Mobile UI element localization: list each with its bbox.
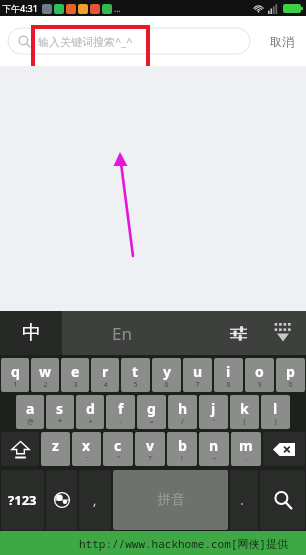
staticText: 7 — [195, 380, 200, 390]
button[interactable]: h — [168, 395, 197, 429]
staticText: . — [245, 454, 247, 464]
staticText: g — [147, 399, 156, 418]
button[interactable]: , — [79, 470, 111, 530]
staticText: + — [88, 417, 93, 427]
staticText: 5 — [133, 380, 138, 390]
staticText: m — [239, 436, 253, 455]
button[interactable]: j — [199, 395, 228, 429]
staticText: 2 — [43, 380, 48, 390]
button[interactable]: f — [106, 395, 135, 429]
staticText: c — [114, 436, 122, 455]
staticText: @ — [27, 417, 34, 427]
button[interactable]: 取消 — [266, 28, 298, 55]
button[interactable]: b — [167, 432, 197, 466]
staticText: x — [82, 436, 91, 455]
staticText: 8 — [226, 380, 231, 390]
staticText: , — [93, 492, 97, 508]
button[interactable]: s — [46, 395, 74, 429]
button[interactable]: z — [41, 432, 70, 466]
button[interactable]: Backspace — [263, 432, 305, 466]
staticText: a — [26, 399, 35, 418]
staticText: ( — [243, 417, 246, 427]
button[interactable]: g — [137, 395, 166, 429]
staticText: http://www.hackhome.com[网侠]提供 — [79, 536, 288, 551]
button[interactable]: c — [103, 432, 133, 466]
button[interactable]: Shift — [1, 432, 39, 466]
button[interactable]: Change language — [46, 470, 77, 530]
staticText: 1 — [13, 380, 18, 390]
staticText: s — [56, 399, 64, 418]
staticText: l — [273, 399, 278, 418]
button[interactable]: Hide keyboard — [260, 311, 306, 355]
staticText: o — [255, 362, 264, 381]
staticText: z — [52, 436, 59, 455]
button[interactable]: q — [1, 358, 29, 392]
staticText: q — [11, 362, 20, 381]
staticText: w — [39, 362, 51, 381]
staticText: 3 — [73, 380, 78, 390]
staticText: y — [163, 362, 171, 381]
staticText: b — [178, 436, 187, 455]
button[interactable]: k — [230, 395, 259, 429]
button[interactable]: d — [76, 395, 104, 429]
button[interactable]: y — [152, 358, 181, 392]
staticText: 下午4:31 — [2, 2, 38, 14]
staticText: ' — [213, 417, 215, 427]
staticText: * — [58, 417, 62, 427]
staticText: e — [71, 362, 80, 381]
staticText: r — [102, 362, 109, 381]
button[interactable]: o — [245, 358, 274, 392]
button[interactable]: ?123 — [1, 470, 44, 530]
button[interactable]: r — [91, 358, 119, 392]
staticText: ` — [55, 454, 57, 464]
staticText: 0 — [288, 380, 293, 390]
button[interactable]: u — [183, 358, 212, 392]
staticText: = — [149, 417, 154, 427]
staticText: ~ — [212, 454, 217, 464]
button[interactable]: e — [61, 358, 89, 392]
button[interactable]: v — [135, 432, 165, 466]
button[interactable]: En — [62, 311, 182, 355]
staticText: n — [209, 436, 219, 455]
staticText: 6 — [164, 380, 169, 390]
staticText: k — [240, 399, 249, 418]
staticText: En — [112, 322, 132, 345]
staticText: v — [146, 436, 154, 455]
staticText: p — [286, 362, 295, 381]
staticText: 4 — [103, 380, 108, 390]
staticText: : — [86, 454, 88, 464]
staticText: 9 — [257, 380, 262, 390]
button[interactable]: Input settings — [216, 311, 260, 355]
button[interactable]: Search — [260, 470, 305, 530]
staticText: t — [132, 362, 139, 381]
staticText: ?123 — [8, 491, 37, 509]
button[interactable]: 。 — [230, 470, 258, 530]
button[interactable]: x — [72, 432, 101, 466]
button[interactable]: t — [121, 358, 150, 392]
button[interactable]: i — [214, 358, 243, 392]
staticText: - — [119, 417, 122, 427]
staticText: i — [226, 362, 231, 381]
button[interactable]: a — [16, 395, 44, 429]
staticText: 中 — [22, 321, 41, 345]
staticText: 。 — [240, 495, 249, 506]
button[interactable]: 拼音 — [113, 470, 228, 530]
staticText: 拼音 — [157, 491, 185, 509]
button[interactable]: p — [276, 358, 305, 392]
staticText: f — [118, 399, 124, 418]
button[interactable]: l — [261, 395, 290, 429]
staticText: ) — [274, 417, 277, 427]
staticText: d — [86, 399, 95, 418]
staticText: / — [181, 417, 184, 427]
staticText: j — [211, 399, 216, 418]
staticText: 取消 — [270, 34, 294, 49]
button[interactable]: m — [231, 432, 261, 466]
button[interactable]: n — [199, 432, 229, 466]
staticText: ... — [114, 3, 121, 14]
button[interactable]: w — [31, 358, 59, 392]
staticText: ? — [148, 454, 152, 464]
button[interactable]: 中 — [0, 311, 62, 355]
staticText: ! — [181, 454, 183, 464]
staticText: 输入关键词搜索^_^ — [38, 34, 133, 49]
button[interactable]: 输入关键词搜索^_^ — [8, 28, 258, 54]
